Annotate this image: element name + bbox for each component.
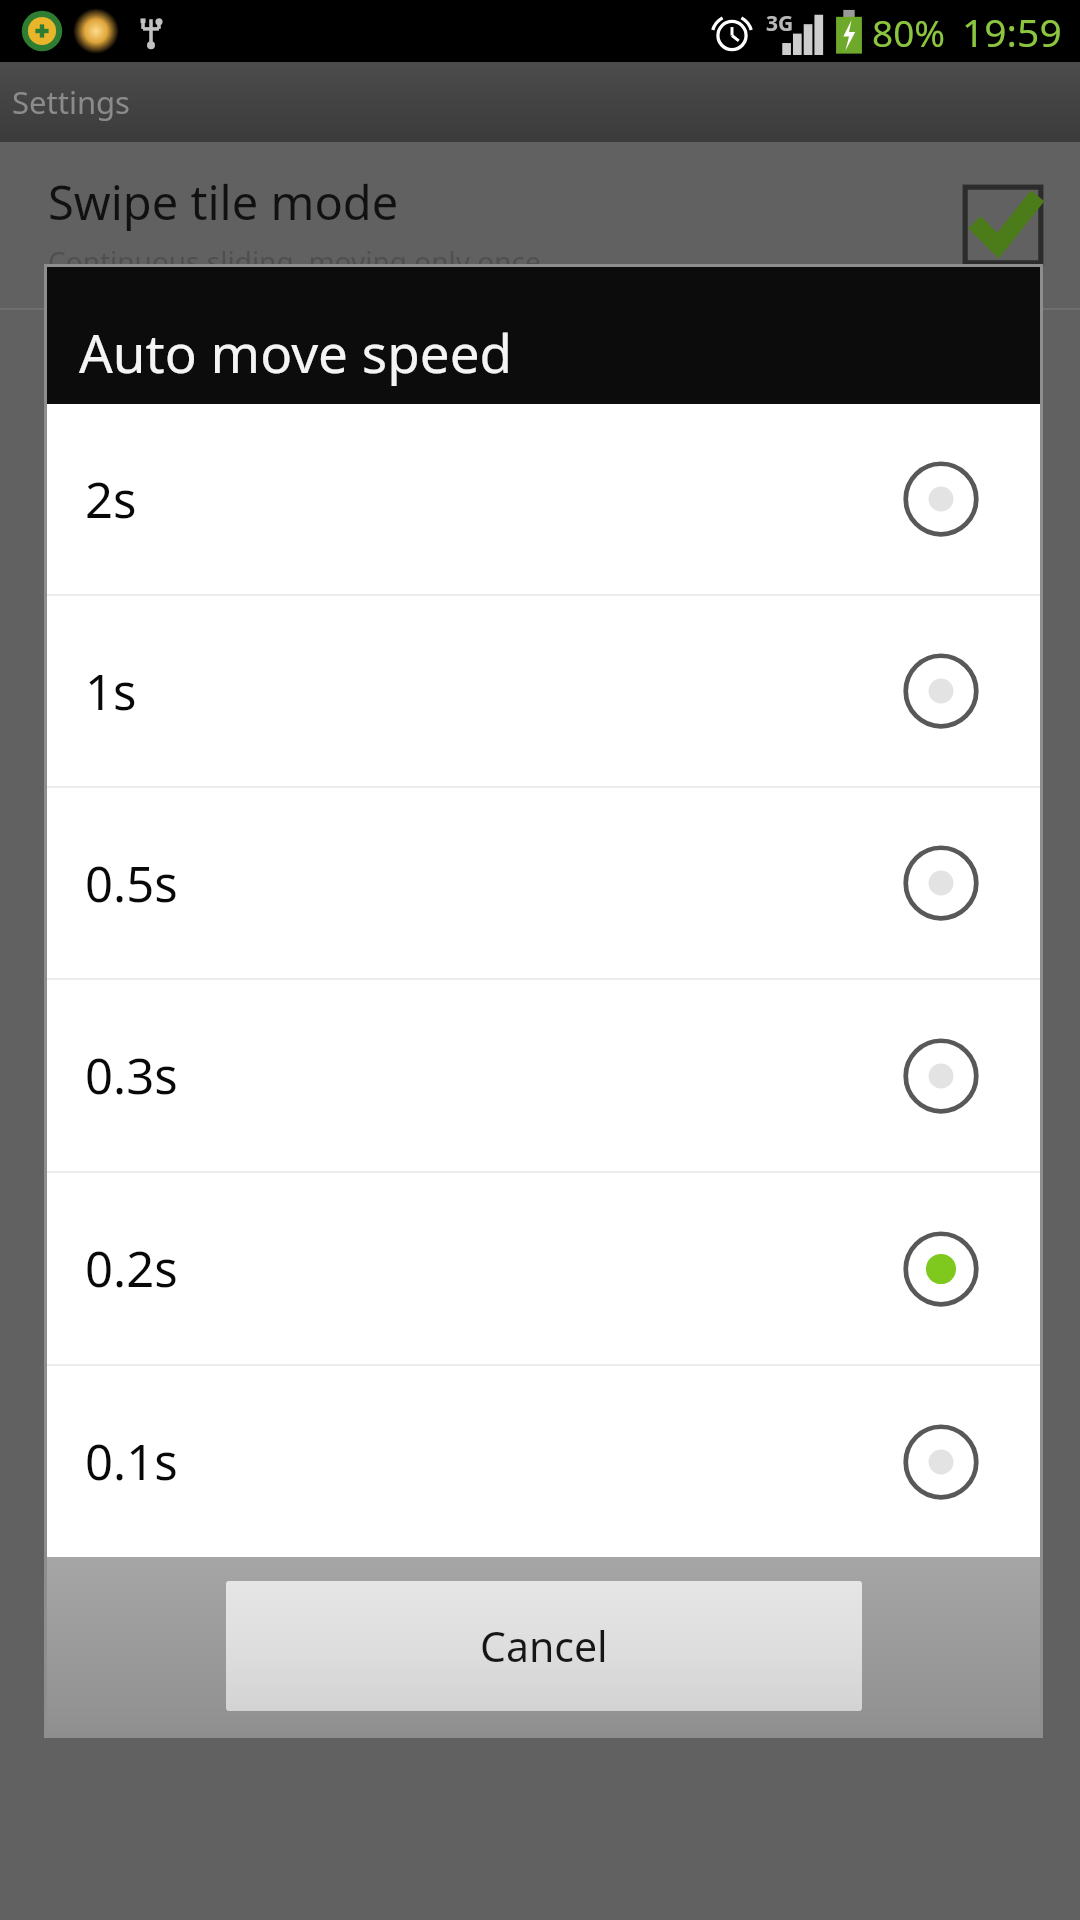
- staticText: Continuous sliding, moving only once: [48, 242, 541, 280]
- other: Alarm set: [710, 10, 754, 54]
- staticText: Auto move speed: [79, 316, 513, 388]
- staticText: 0.1s: [85, 1428, 898, 1495]
- staticText: 80%: [872, 7, 946, 57]
- staticText: 0.2s: [85, 1235, 898, 1302]
- staticText: Settings: [12, 81, 130, 123]
- button[interactable]: 0.3s: [47, 980, 1040, 1171]
- staticText: 0.3s: [85, 1042, 898, 1109]
- button[interactable]: 2s: [47, 404, 1040, 594]
- button[interactable]: 1s: [47, 596, 1040, 786]
- staticText: Swipe tile mode: [48, 170, 399, 234]
- button[interactable]: 0.2s: [47, 1173, 1040, 1364]
- staticText: 1s: [85, 658, 898, 725]
- button[interactable]: 0.5s: [47, 788, 1040, 978]
- staticText: 19:59: [962, 5, 1062, 58]
- staticText: 0.5s: [85, 850, 898, 917]
- staticText: Cancel: [480, 1618, 608, 1674]
- staticText: 3G: [766, 9, 794, 38]
- button[interactable]: 0.1s: [47, 1366, 1040, 1557]
- staticText: 2s: [85, 466, 898, 533]
- button[interactable]: Cancel: [226, 1581, 862, 1711]
